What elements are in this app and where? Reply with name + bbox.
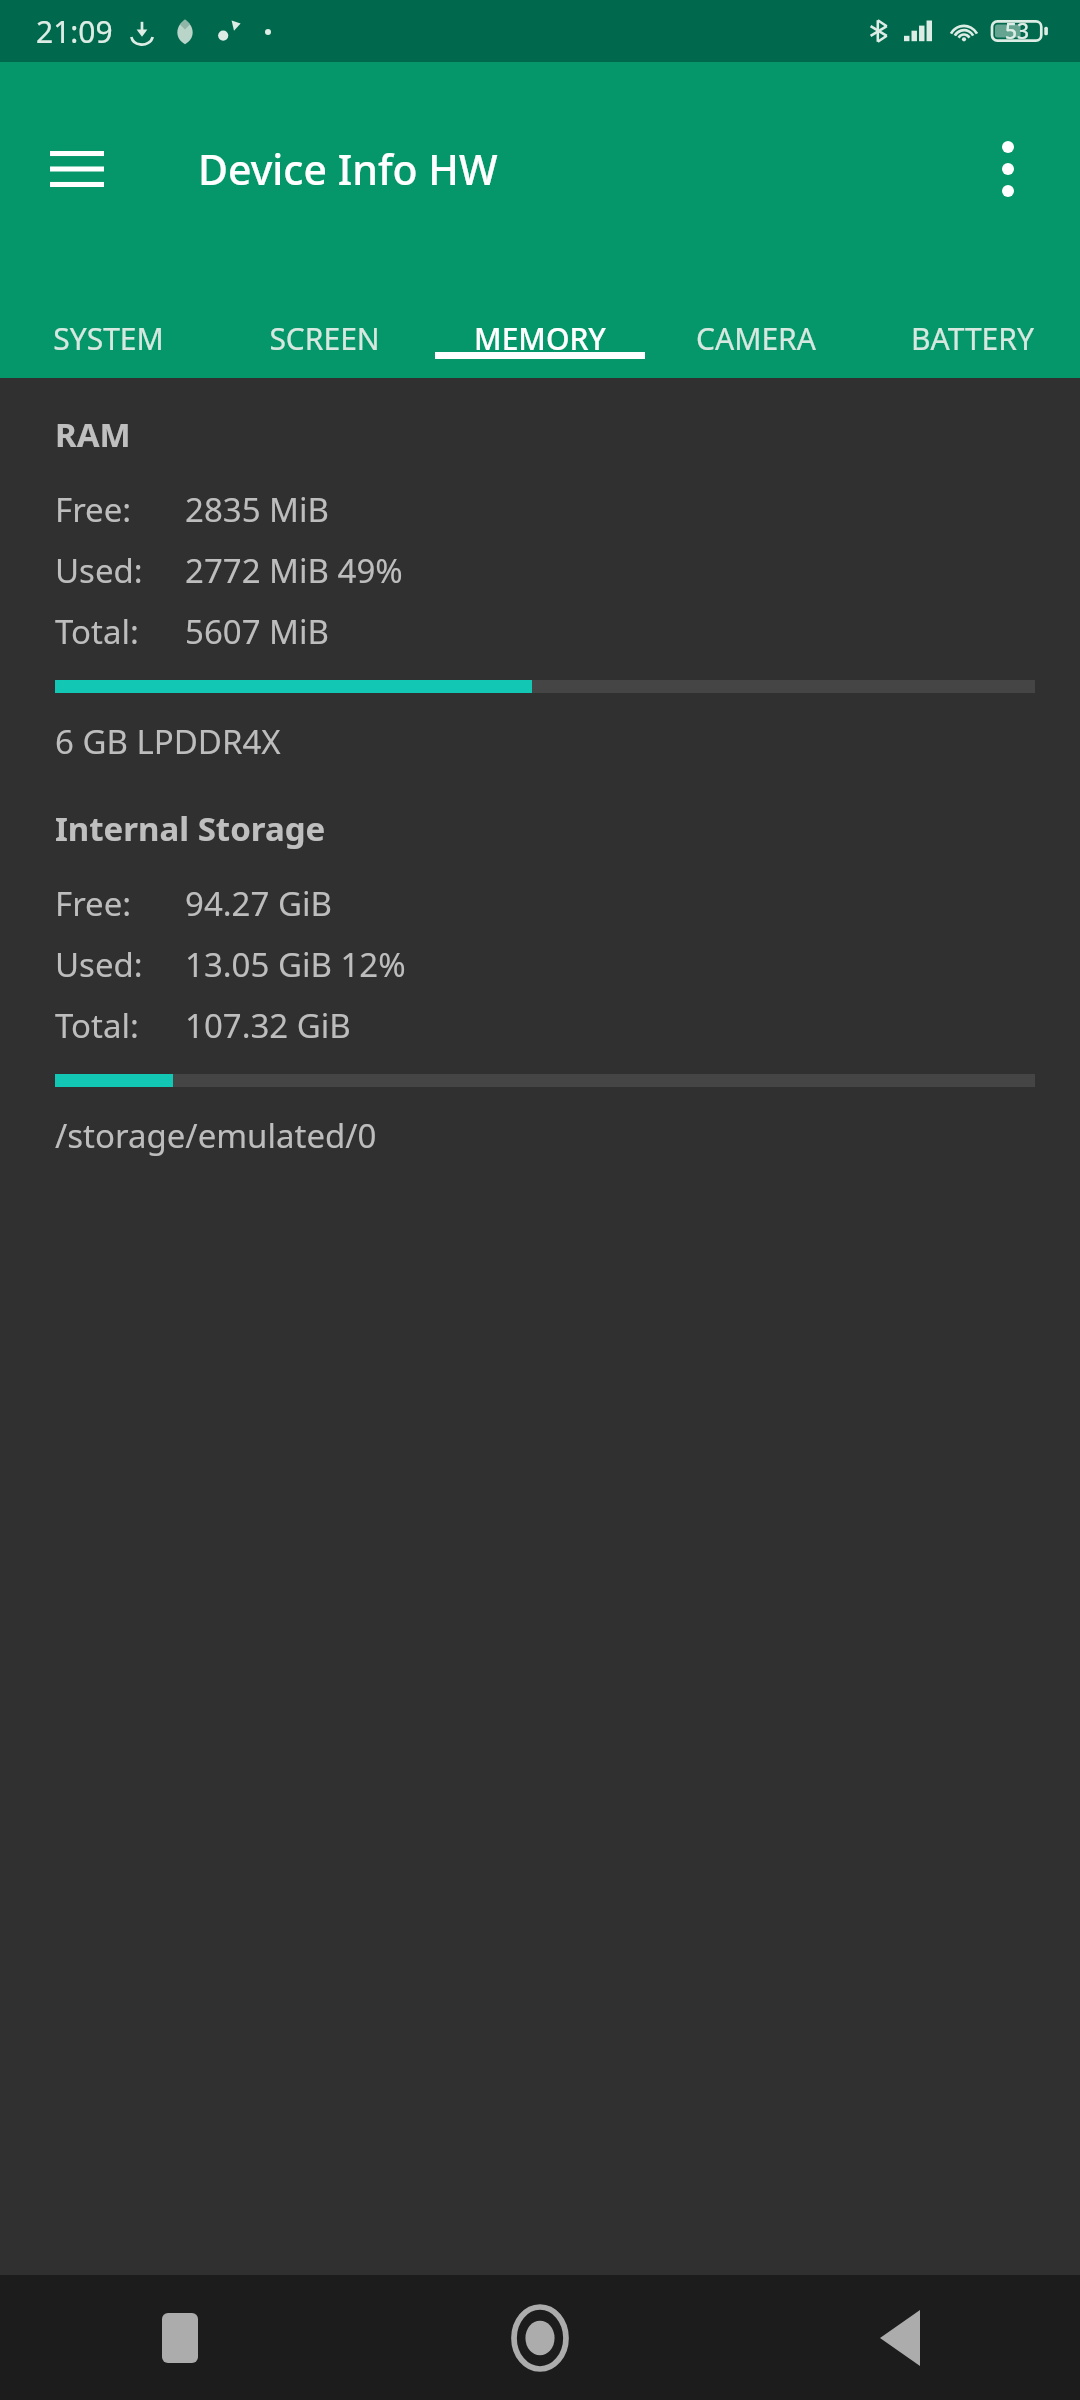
button[interactable]: BATTERY <box>864 276 1080 378</box>
button[interactable]: SYSTEM <box>0 276 216 378</box>
button[interactable]: Home <box>360 2275 720 2400</box>
staticText: /storage/emulated/0 <box>55 1113 377 1158</box>
button[interactable]: Recent apps <box>0 2275 360 2400</box>
staticText: 6 GB LPDDR4X <box>55 719 281 764</box>
staticText: 107.32 GiB <box>185 1003 351 1048</box>
staticText: RAM <box>55 412 131 457</box>
staticText: CAMERA <box>696 318 816 359</box>
staticText: SCREEN <box>269 318 380 359</box>
staticText: Device Info HW <box>198 141 498 197</box>
staticText: Used: <box>55 548 143 593</box>
staticText: SYSTEM <box>53 318 164 359</box>
button[interactable]: More options <box>956 117 1060 221</box>
staticText: 53 <box>1005 17 1030 46</box>
staticText: Free: <box>55 487 132 532</box>
staticText: 2835 MiB <box>185 487 329 532</box>
button[interactable]: MEMORY <box>432 276 648 378</box>
staticText: MEMORY <box>474 318 606 359</box>
staticText: 5607 MiB <box>185 609 329 654</box>
staticText: 21:09 <box>36 11 113 52</box>
staticText: 2772 MiB 49% <box>185 548 403 593</box>
staticText: Total: <box>55 609 139 654</box>
staticText: Internal Storage <box>55 806 326 851</box>
staticText: 94.27 GiB <box>185 881 332 926</box>
staticText: Total: <box>55 1003 139 1048</box>
staticText: Free: <box>55 881 132 926</box>
button[interactable]: Back <box>720 2275 1080 2400</box>
button[interactable]: SCREEN <box>216 276 432 378</box>
staticText: Used: <box>55 942 143 987</box>
staticText: BATTERY <box>911 318 1034 359</box>
button[interactable]: CAMERA <box>648 276 864 378</box>
button[interactable]: Open navigation drawer <box>22 114 132 224</box>
staticText: 13.05 GiB 12% <box>185 942 406 987</box>
